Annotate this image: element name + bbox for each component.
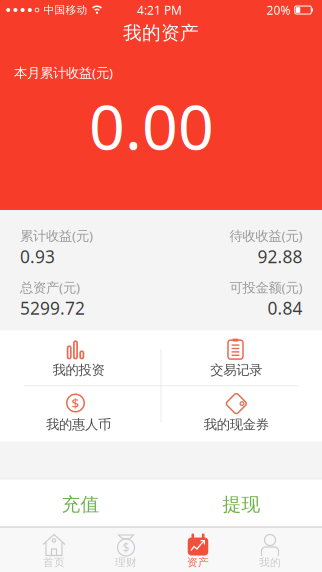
staticText: 本月累计收益(元) — [14, 64, 113, 81]
staticText: 首页 — [43, 556, 65, 569]
button[interactable]: 我的 — [234, 527, 306, 572]
staticText: 中国移动 — [43, 3, 87, 16]
staticText: 我的投资 — [52, 362, 104, 378]
staticText: 我的惠人币 — [46, 416, 111, 433]
button[interactable]: 资产 — [162, 527, 234, 572]
staticText: 资产 — [187, 556, 209, 569]
button[interactable]: 交易记录 — [161, 330, 322, 386]
staticText: 提现 — [222, 493, 260, 516]
staticText: 我的 — [259, 556, 281, 569]
staticText: 待收收益(元) — [229, 227, 302, 244]
button[interactable]: 我的投资 — [0, 330, 161, 386]
button[interactable]: 我的现金券 — [161, 386, 322, 441]
button[interactable]: 提现 — [161, 479, 322, 527]
staticText: 5299.72 — [20, 297, 85, 320]
staticText: 20% — [266, 2, 290, 18]
staticText: 0.84 — [267, 297, 302, 320]
button[interactable]: 充值 — [0, 479, 161, 527]
staticText: 我的现金券 — [204, 416, 269, 433]
staticText: $ — [71, 394, 79, 412]
staticText: 可投金额(元) — [229, 278, 302, 296]
staticText: 92.88 — [257, 245, 302, 268]
button[interactable]: $ — [0, 386, 161, 441]
staticText: 4:21 PM — [137, 2, 182, 18]
staticText: 交易记录 — [210, 362, 262, 378]
staticText: $ — [122, 539, 129, 555]
staticText: 我的资产 — [123, 21, 199, 44]
staticText: 充值 — [61, 493, 99, 516]
staticText: 理财 — [115, 556, 137, 569]
button[interactable]: $ — [90, 527, 162, 572]
staticText: 累计收益(元) — [20, 227, 93, 244]
button[interactable]: 首页 — [18, 527, 90, 572]
staticText: 0.00 — [89, 84, 214, 167]
staticText: 总资产(元) — [20, 278, 80, 296]
staticText: 0.93 — [20, 245, 55, 268]
